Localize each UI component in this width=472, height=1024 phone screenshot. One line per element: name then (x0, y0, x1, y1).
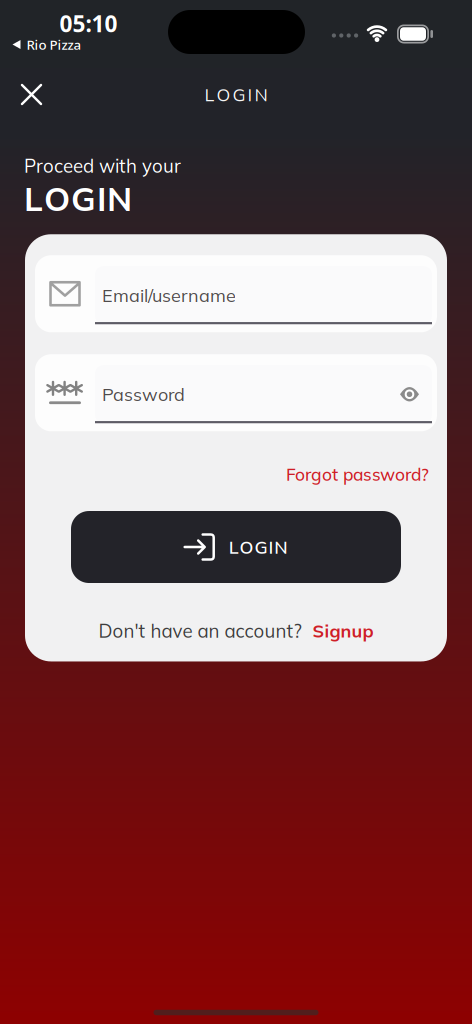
staticText: Rio Pizza (26, 35, 81, 54)
button[interactable]: Close (11, 74, 52, 115)
staticText: O (44, 177, 70, 219)
staticText: N (107, 177, 132, 219)
staticText: Don't have an account? (98, 619, 301, 642)
staticText: Password (102, 383, 185, 406)
staticText: N (274, 536, 287, 558)
staticText: O (240, 536, 254, 558)
button[interactable]: Signup (312, 619, 373, 642)
staticText: G (254, 536, 267, 558)
staticText: 05:10 (59, 8, 117, 39)
button[interactable]: Show password (400, 386, 432, 402)
staticText: G (232, 83, 245, 106)
staticText: G (71, 177, 96, 219)
staticText: Proceed with your (24, 154, 181, 177)
button[interactable]: Forgot password? (286, 463, 429, 485)
staticText: I (247, 83, 252, 106)
staticText: N (254, 83, 267, 106)
staticText: O (216, 83, 230, 106)
staticText: Signup (312, 619, 373, 642)
staticText: I (97, 177, 106, 219)
staticText: L (229, 536, 239, 558)
staticText: L (204, 83, 214, 106)
staticText: L (24, 177, 43, 219)
staticText: Forgot password? (286, 463, 429, 485)
staticText: I (268, 536, 273, 558)
button[interactable]: L (71, 511, 401, 583)
staticText: Email/username (102, 284, 236, 307)
